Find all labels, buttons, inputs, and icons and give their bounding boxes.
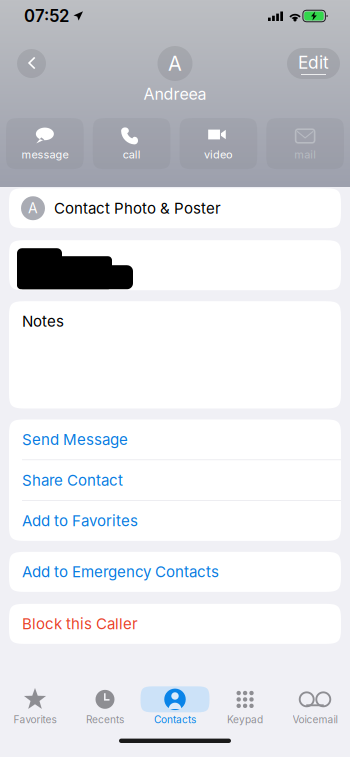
staticText: Contacts [154, 713, 196, 726]
staticText: mail [294, 148, 316, 161]
button[interactable]: message [6, 118, 84, 169]
staticText: A [28, 200, 38, 217]
button[interactable]: call [93, 118, 171, 169]
staticText: Block this Caller [22, 615, 138, 633]
button[interactable]: Add to Favorites [9, 501, 341, 541]
staticText: message [21, 148, 68, 161]
staticText: Notes [22, 312, 64, 330]
button[interactable]: video [179, 118, 257, 169]
staticText: video [204, 148, 233, 161]
button[interactable]: A [9, 188, 341, 228]
staticText: call [123, 148, 141, 161]
button[interactable]: Voicemail [280, 686, 350, 726]
button[interactable]: Back [11, 48, 52, 78]
button[interactable]: Favorites [0, 686, 70, 726]
staticText: Share Contact [22, 471, 123, 489]
button[interactable]: Add to Emergency Contacts [9, 552, 341, 592]
staticText: Andreea [143, 84, 206, 104]
staticText: Add to Favorites [22, 512, 138, 530]
staticText: Favorites [13, 713, 56, 726]
staticText: Recents [86, 713, 124, 726]
button[interactable]: Keypad [210, 686, 280, 726]
staticText: Edit [298, 52, 329, 73]
button[interactable]: Block this Caller [9, 604, 341, 644]
staticText: Contact Photo & Poster [54, 199, 221, 217]
staticText: Send Message [22, 430, 128, 448]
button[interactable]: Edit [287, 48, 340, 79]
staticText: Keypad [227, 713, 263, 726]
button[interactable]: mail [266, 118, 344, 169]
button[interactable]: Contacts [140, 686, 210, 726]
button[interactable]: Recents [70, 686, 140, 726]
staticText: Voicemail [292, 713, 337, 726]
staticText: A [168, 51, 182, 76]
button[interactable]: Share Contact [9, 460, 341, 500]
button[interactable]: Send Message [9, 419, 341, 459]
staticText: Add to Emergency Contacts [22, 563, 219, 581]
staticText: 07:52 [24, 6, 69, 26]
